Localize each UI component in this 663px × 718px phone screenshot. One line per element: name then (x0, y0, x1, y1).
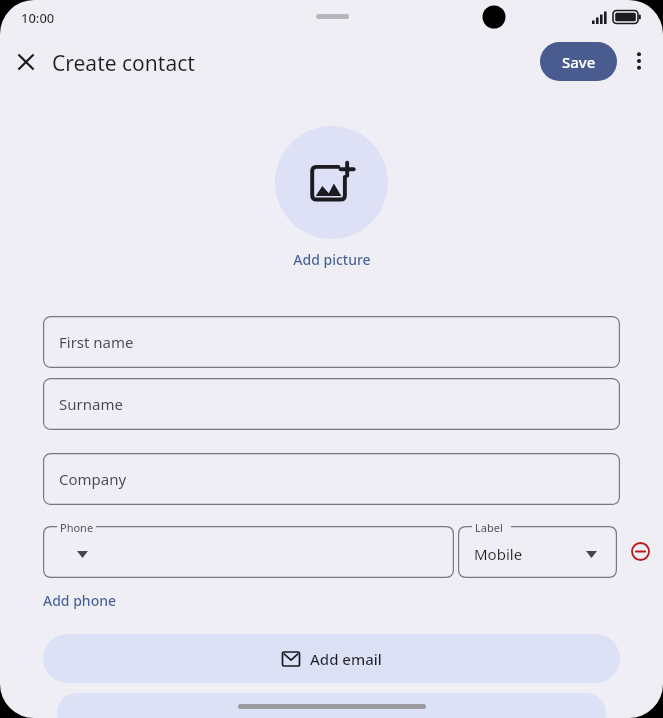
button[interactable]: Add picture (270, 246, 393, 272)
staticText: Save (562, 52, 596, 72)
button[interactable]: Surname (43, 378, 620, 430)
button[interactable]: Company (43, 453, 620, 505)
button[interactable]: Add more (57, 693, 606, 718)
staticText: Label (475, 520, 503, 535)
staticText: Phone (60, 520, 94, 535)
button[interactable]: More options (620, 42, 658, 80)
staticText: Create contact (52, 49, 195, 78)
button[interactable]: Add picture (275, 126, 388, 239)
button[interactable]: Save (540, 42, 617, 81)
staticText: First name (59, 332, 134, 352)
button[interactable]: First name (43, 316, 620, 368)
staticText: 10:00 (21, 9, 55, 27)
button[interactable]: Remove phone (622, 533, 659, 570)
staticText: Mobile (474, 544, 523, 564)
staticText: Surname (59, 394, 123, 414)
staticText: Company (59, 469, 127, 489)
button[interactable]: Add phone (43, 588, 116, 613)
staticText: Add picture (293, 250, 371, 269)
button[interactable]: Add email (43, 634, 620, 683)
staticText: Add email (310, 649, 382, 669)
staticText: Add phone (43, 591, 116, 610)
button[interactable]: Label (458, 526, 617, 578)
button[interactable]: Close (6, 42, 46, 82)
button[interactable]: Phone (43, 526, 454, 578)
